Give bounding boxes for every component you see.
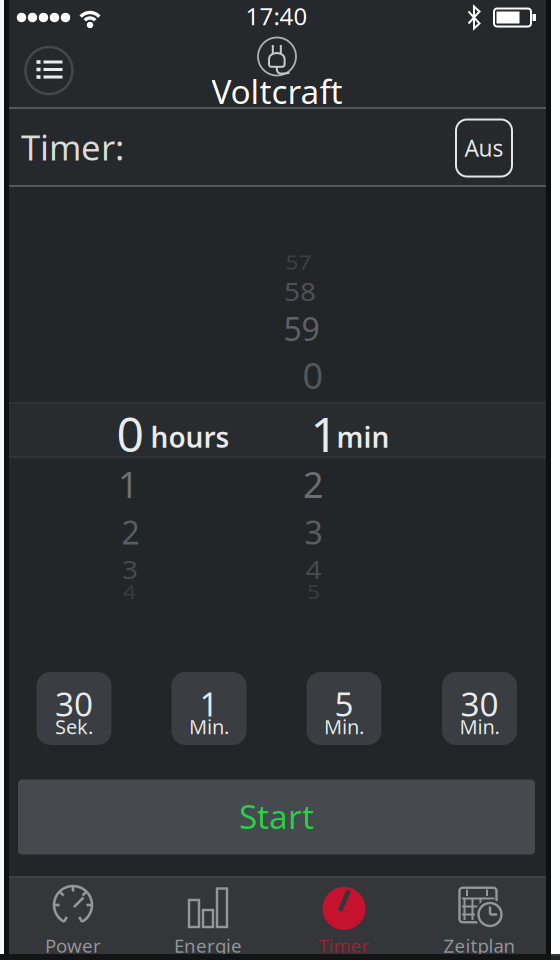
- staticText: 1: [118, 460, 139, 508]
- button[interactable]: Aus: [456, 119, 512, 176]
- button[interactable]: Energie: [138, 877, 278, 960]
- staticText: min: [336, 418, 389, 456]
- button[interactable]: Zeitplan: [409, 877, 549, 960]
- button[interactable]: Power: [3, 877, 143, 960]
- staticText: 3: [304, 511, 322, 553]
- staticText: Voltcraft: [211, 69, 342, 113]
- staticText: Power: [45, 933, 101, 958]
- staticText: 17:40: [245, 0, 307, 32]
- staticText: 3: [122, 550, 138, 588]
- button[interactable]: Menu: [25, 47, 72, 94]
- staticText: 30: [460, 681, 498, 726]
- staticText: Energie: [174, 933, 242, 958]
- staticText: 0: [116, 402, 143, 465]
- staticText: 5: [307, 576, 320, 606]
- staticText: 30: [55, 681, 93, 726]
- staticText: Start: [239, 794, 314, 838]
- staticText: Min.: [459, 713, 499, 740]
- staticText: 2: [303, 460, 324, 508]
- staticText: Aus: [464, 133, 503, 163]
- staticText: 58: [284, 272, 316, 310]
- staticText: 2: [121, 511, 139, 553]
- staticText: Timer: [318, 933, 369, 958]
- button[interactable]: Start: [18, 779, 535, 854]
- staticText: 1: [310, 402, 337, 465]
- staticText: 1: [199, 681, 218, 726]
- staticText: Min.: [189, 713, 229, 740]
- button[interactable]: Timer: [274, 877, 414, 960]
- button[interactable]: 5: [306, 672, 381, 745]
- staticText: 0: [302, 351, 323, 399]
- button[interactable]: 30: [442, 672, 517, 745]
- button[interactable]: 30: [36, 672, 111, 745]
- staticText: 5: [334, 681, 353, 726]
- staticText: Zeitplan: [443, 933, 515, 958]
- staticText: Timer:: [21, 124, 124, 170]
- staticText: Sek.: [55, 713, 93, 740]
- staticText: 59: [283, 307, 319, 350]
- button[interactable]: 1: [171, 672, 246, 745]
- staticText: 4: [305, 550, 321, 588]
- staticText: hours: [150, 418, 229, 456]
- staticText: 57: [285, 247, 311, 277]
- staticText: 4: [123, 576, 136, 606]
- staticText: Min.: [324, 713, 364, 740]
